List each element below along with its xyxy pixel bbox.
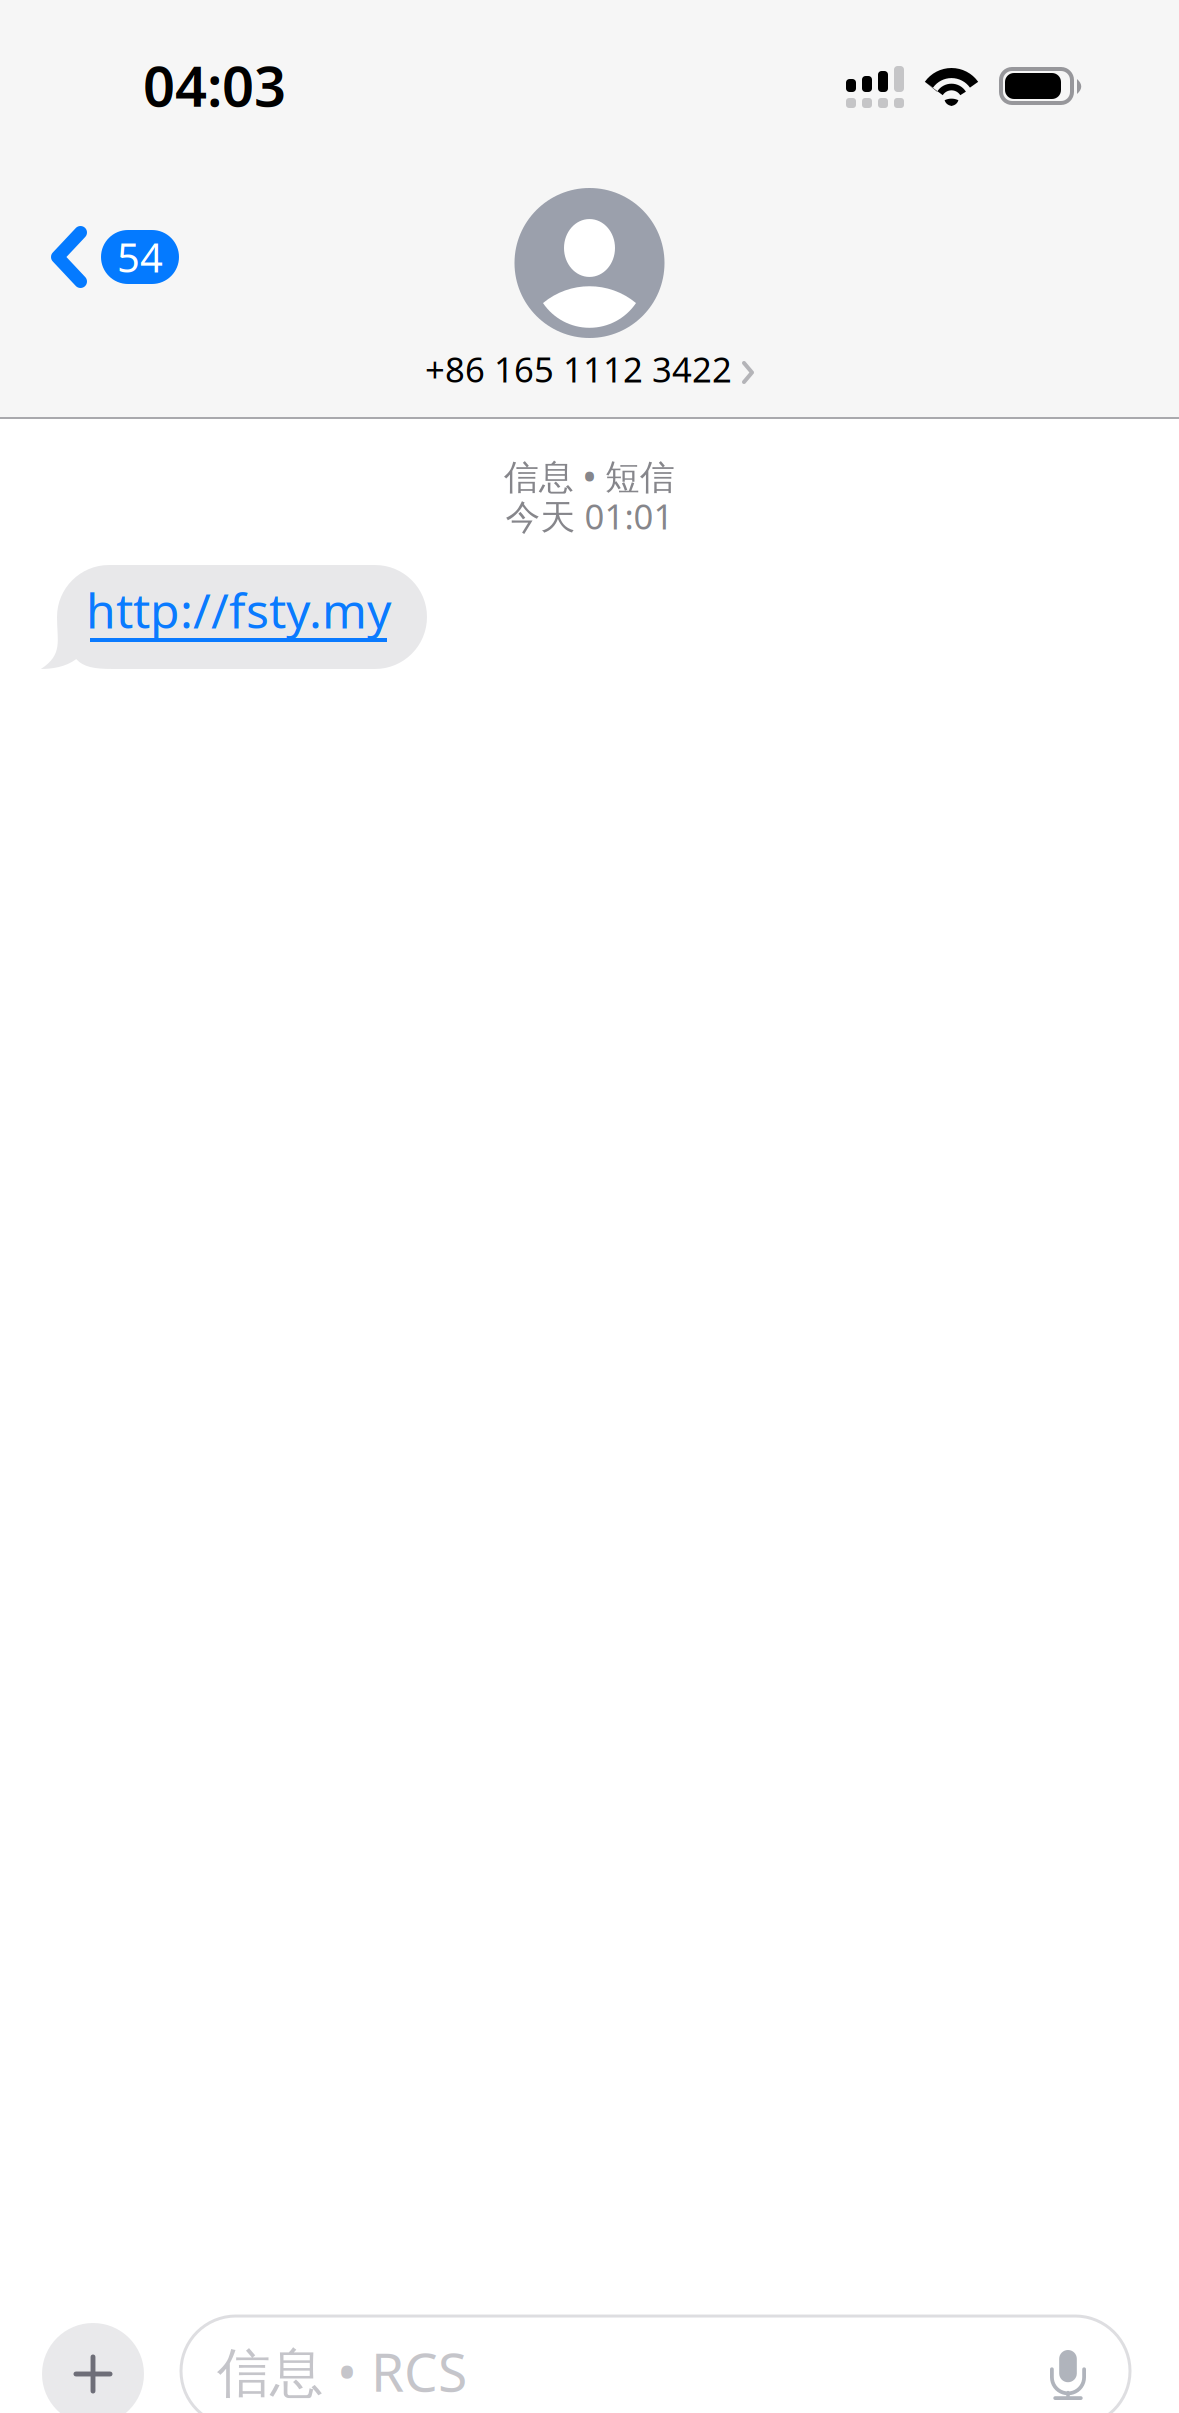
button[interactable]: +86 165 1112 3422 [0, 188, 1179, 392]
staticText: 信息 • 短信 [504, 453, 675, 499]
staticText: http://fsty.my [86, 578, 391, 642]
button[interactable]: Add attachment [42, 2323, 144, 2413]
button[interactable]: 54 [0, 208, 179, 306]
button[interactable]: http://fsty.my [57, 565, 427, 669]
staticText: 54 [117, 230, 163, 283]
button[interactable]: 信息 • RCS [181, 2316, 1130, 2413]
staticText: +86 165 1112 3422 [425, 346, 732, 392]
staticText: 信息 • RCS [217, 2336, 467, 2406]
staticText: 04:03 [143, 48, 286, 122]
staticText: 今天 01:01 [505, 493, 673, 539]
